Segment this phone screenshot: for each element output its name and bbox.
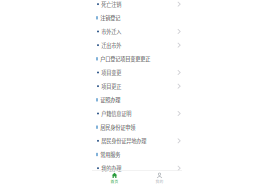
staticText: 常用服务	[100, 151, 120, 158]
button[interactable]: 我的办理	[92, 161, 182, 175]
button[interactable]: 首页	[92, 173, 137, 184]
button[interactable]: 项目变更	[92, 66, 182, 79]
staticText: 证照办理	[100, 96, 120, 104]
staticText: 居民身份证异地办理	[101, 137, 146, 145]
button[interactable]: 市外迁入	[92, 25, 182, 38]
staticText: 我的办理	[101, 164, 121, 172]
staticText: 迁出市外	[101, 41, 121, 49]
staticText: 户籍信息证明	[101, 110, 131, 117]
button[interactable]: 迁出市外	[92, 38, 182, 52]
staticText: 首页	[110, 179, 118, 184]
button[interactable]: 项目更正	[92, 79, 182, 93]
staticText: 项目更正	[101, 82, 121, 90]
button[interactable]: 居民身份证异地办理	[92, 134, 182, 148]
button[interactable]: 我的	[137, 173, 182, 184]
button[interactable]: 死亡注销	[92, 0, 182, 11]
staticText: 项目变更	[101, 69, 121, 76]
staticText: 市外迁入	[101, 28, 121, 35]
staticText: 注销登记	[100, 14, 120, 21]
staticText: 户口登记项目变更更正	[100, 55, 150, 62]
button[interactable]: 户籍信息证明	[92, 107, 182, 120]
staticText: 我的	[155, 179, 163, 184]
staticText: 死亡注销	[101, 0, 121, 8]
staticText: 居民身份证申领	[100, 123, 135, 131]
